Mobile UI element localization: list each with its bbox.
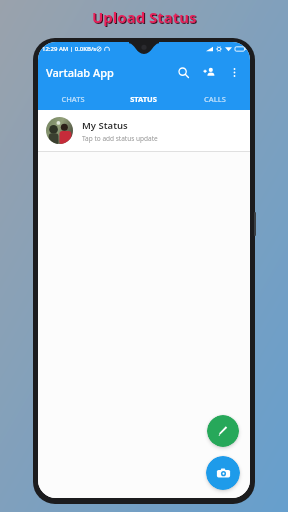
staticText: STATUS — [130, 94, 157, 104]
button[interactable]: Search — [173, 62, 193, 82]
button[interactable]: Camera — [206, 456, 240, 490]
button[interactable]: CHATS — [38, 88, 108, 110]
button[interactable]: My Status — [38, 110, 250, 151]
staticText: My Status — [82, 119, 128, 132]
staticText: Tap to add status update — [82, 134, 158, 143]
staticText: 12:29 AM | 0.0KB/s — [42, 45, 97, 53]
button[interactable]: More options — [224, 62, 244, 82]
staticText: CALLS — [204, 94, 226, 104]
button[interactable]: Add contact — [199, 62, 219, 82]
button[interactable]: STATUS — [108, 88, 179, 110]
staticText: CHATS — [61, 94, 85, 104]
staticText: Vartalab App — [46, 65, 114, 80]
button[interactable]: Write status — [207, 415, 239, 447]
staticText: Upload Status — [92, 7, 197, 27]
button[interactable]: CALLS — [179, 88, 250, 110]
staticText: Upload Status — [93, 8, 198, 28]
